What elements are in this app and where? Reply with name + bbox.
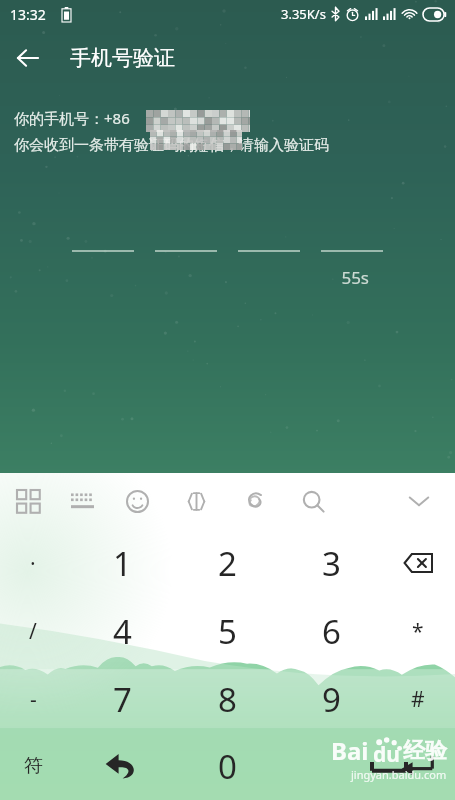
button[interactable]: Text edit — [174, 473, 218, 529]
button[interactable]: Apps — [6, 473, 50, 529]
button[interactable]: 2 — [177, 529, 277, 597]
button[interactable]: Clipboard — [233, 473, 277, 529]
button[interactable]: 6 — [281, 597, 381, 665]
staticText: 8 — [218, 677, 237, 722]
staticText: # — [411, 685, 425, 714]
button[interactable]: Hide keyboard — [397, 479, 441, 523]
staticText: 4 — [113, 609, 132, 654]
button[interactable]: 0 — [177, 732, 277, 800]
staticText: 2 — [218, 541, 237, 586]
button[interactable]: Search — [291, 473, 335, 529]
button[interactable]: 9 — [281, 665, 381, 733]
staticText: jingyan.baidu.com — [351, 767, 447, 782]
button[interactable]: 7 — [72, 665, 172, 733]
button[interactable]: - — [0, 665, 66, 733]
button[interactable]: 4 — [72, 597, 172, 665]
button[interactable]: / — [0, 597, 66, 665]
button[interactable]: 5 — [177, 597, 277, 665]
staticText: 你的手机号：+86 — [14, 108, 130, 128]
staticText: 符 — [24, 754, 43, 778]
button[interactable]: Emoji — [115, 473, 159, 529]
staticText: 7 — [113, 677, 132, 722]
button[interactable]: # — [385, 665, 451, 733]
staticText: 3 — [322, 541, 341, 586]
staticText: 13:32 — [10, 5, 46, 24]
button[interactable]: 3 — [281, 529, 381, 597]
staticText: · — [30, 549, 36, 578]
staticText: 9 — [322, 677, 341, 722]
staticText: - — [30, 685, 37, 714]
button[interactable]: Delete — [385, 529, 451, 597]
button[interactable]: 55s — [0, 266, 369, 289]
button[interactable]: 1 — [72, 529, 172, 597]
staticText: 5 — [218, 609, 237, 654]
button[interactable]: 符 — [0, 732, 66, 800]
staticText: Bai — [331, 734, 369, 767]
staticText: 1 — [113, 541, 132, 586]
staticText: du — [373, 740, 400, 769]
staticText: 你会收到一条带有验证码的短信，请输入验证码 — [14, 136, 329, 155]
button[interactable]: 8 — [177, 665, 277, 733]
button[interactable]: Shift — [72, 732, 172, 800]
staticText: 3.35K/s — [281, 5, 326, 23]
button[interactable]: * — [385, 597, 451, 665]
button[interactable]: Keyboard layout — [60, 473, 104, 529]
button[interactable]: · — [0, 529, 66, 597]
staticText: / — [29, 617, 37, 646]
button[interactable]: Enter — [385, 732, 451, 800]
staticText: * — [412, 617, 424, 646]
staticText: 手机号验证 — [70, 45, 175, 71]
staticText: 0 — [218, 744, 237, 789]
button[interactable]: Space — [358, 732, 420, 800]
button[interactable]: Back — [0, 30, 56, 86]
staticText: 经验 — [403, 737, 447, 765]
staticText: 6 — [322, 609, 341, 654]
